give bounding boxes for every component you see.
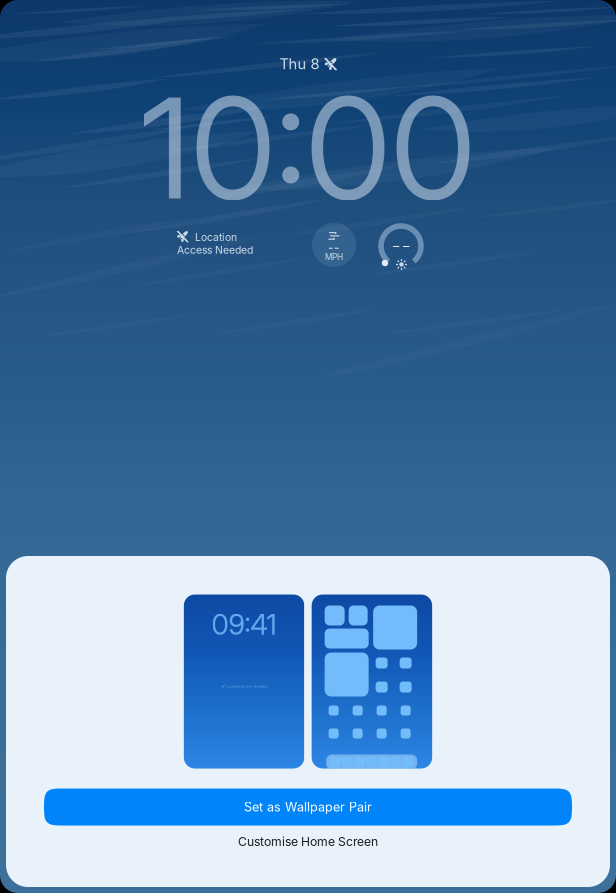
staticText: 09:41 xyxy=(212,608,277,641)
staticText: – – xyxy=(393,238,409,253)
staticText: Customise Home Screen xyxy=(238,834,378,849)
staticText: Thu 8 xyxy=(279,55,319,73)
staticText: MPH xyxy=(325,252,343,262)
staticText: Set as Wallpaper Pair xyxy=(244,799,372,815)
staticText: Location Access Needed xyxy=(226,684,267,689)
button[interactable]: Set as Wallpaper Pair xyxy=(44,788,572,825)
staticText: Location Access Needed xyxy=(177,231,253,256)
button[interactable]: Customise Home Screen xyxy=(238,831,378,851)
staticText: -- xyxy=(328,240,340,255)
staticText: 10:00 xyxy=(140,64,475,232)
